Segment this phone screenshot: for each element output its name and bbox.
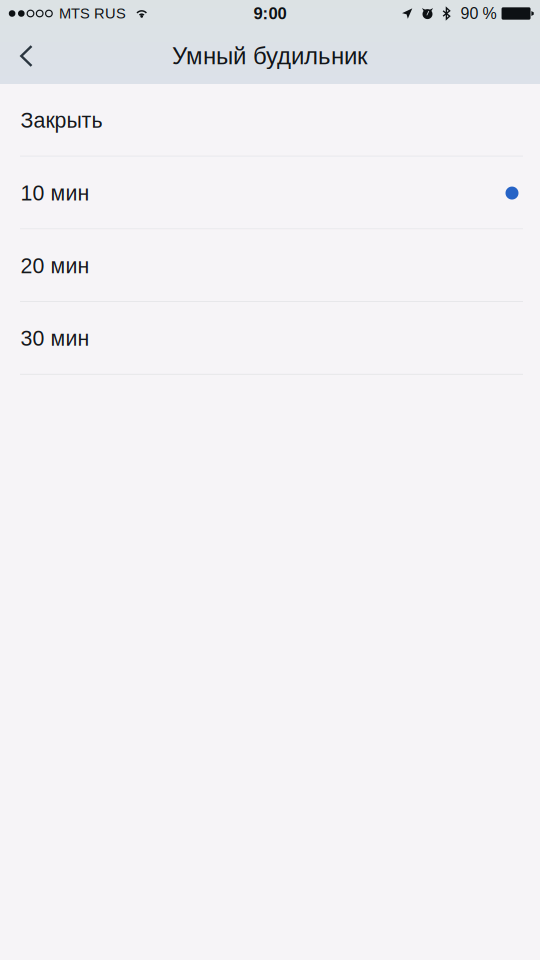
staticText: 90 % <box>460 5 496 22</box>
button[interactable]: 20 мин <box>0 229 540 302</box>
staticText: 30 мин <box>20 326 89 350</box>
staticText: 20 мин <box>20 254 89 278</box>
staticText: Умный будильник <box>172 43 368 69</box>
button[interactable]: 10 мин <box>0 157 540 229</box>
staticText: Закрыть <box>20 108 102 132</box>
staticText: MTS RUS <box>59 5 126 22</box>
button[interactable]: Back <box>0 30 47 82</box>
staticText: 9:00 <box>253 4 286 23</box>
staticText: 10 мин <box>20 181 89 205</box>
button[interactable]: Закрыть <box>0 84 540 157</box>
button[interactable]: 30 мин <box>0 302 540 375</box>
